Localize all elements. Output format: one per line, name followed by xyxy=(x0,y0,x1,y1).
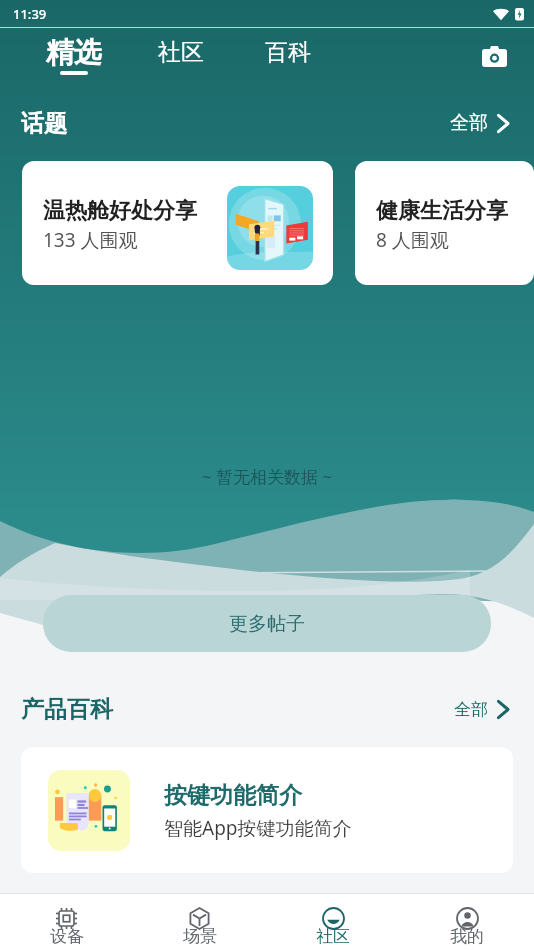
staticText: 全部 xyxy=(450,111,488,135)
button[interactable]: 全部 xyxy=(454,699,509,720)
button[interactable]: 设备 xyxy=(0,894,133,950)
staticText: 精选 xyxy=(46,35,102,70)
staticText: 社区 xyxy=(158,38,204,67)
button[interactable]: 温热舱好处分享 xyxy=(22,161,333,285)
button[interactable]: Camera xyxy=(474,36,514,76)
staticText: 智能App按键功能简介 xyxy=(164,815,352,841)
staticText: 按键功能简介 xyxy=(164,781,302,810)
button[interactable]: 我的 xyxy=(400,894,534,950)
staticText: 健康生活分享 xyxy=(376,197,508,225)
button[interactable]: 按键功能简介 xyxy=(21,747,513,873)
staticText: 11:39 xyxy=(13,5,47,23)
staticText: 场景 xyxy=(183,926,217,947)
staticText: 话题 xyxy=(21,109,67,138)
staticText: 社区 xyxy=(316,926,350,947)
staticText: ~ 暂无相关数据 ~ xyxy=(0,465,534,488)
button[interactable]: 更多帖子 xyxy=(43,595,491,652)
staticText: 产品百科 xyxy=(21,695,113,724)
button[interactable]: 健康生活分享 xyxy=(355,161,534,285)
staticText: 全部 xyxy=(454,699,488,720)
staticText: 温热舱好处分享 xyxy=(43,197,197,225)
button[interactable]: 社区 xyxy=(127,28,234,83)
button[interactable]: 百科 xyxy=(234,28,341,83)
button[interactable]: 社区 xyxy=(266,894,400,950)
button[interactable]: 精选 xyxy=(20,28,127,83)
button[interactable]: 场景 xyxy=(133,894,266,950)
staticText: 设备 xyxy=(50,926,84,947)
staticText: 更多帖子 xyxy=(229,612,305,636)
button[interactable]: 全部 xyxy=(450,111,509,135)
staticText: 百科 xyxy=(265,38,311,67)
staticText: 133 人围观 xyxy=(43,227,138,253)
staticText: 我的 xyxy=(450,926,484,947)
staticText: 8 人围观 xyxy=(376,227,449,253)
